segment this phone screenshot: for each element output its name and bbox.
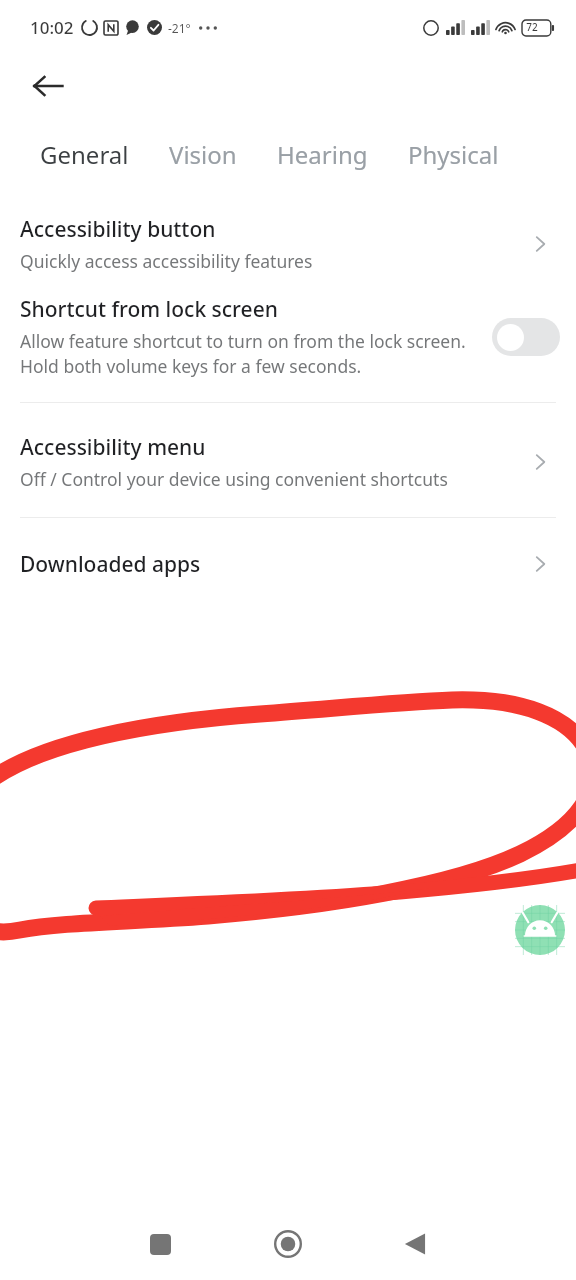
- button[interactable]: Downloaded apps: [0, 540, 576, 588]
- staticText: Accessibility button: [20, 215, 216, 244]
- button[interactable]: Accessibility menu: [0, 429, 576, 495]
- staticText: Accessibility menu: [20, 433, 206, 462]
- button[interactable]: General: [20, 132, 149, 177]
- button[interactable]: Hearing: [257, 132, 388, 177]
- button[interactable]: Back: [387, 1216, 443, 1272]
- staticText: 72: [526, 20, 538, 34]
- button[interactable]: Open Accessibility button: [520, 224, 560, 264]
- button[interactable]: Shortcut from lock screen: [0, 291, 576, 382]
- button[interactable]: Recent apps: [132, 1216, 188, 1272]
- button[interactable]: Accessibility button: [0, 211, 576, 277]
- staticText: Allow feature shortcut to turn on from t…: [20, 329, 484, 378]
- button[interactable]: Shortcut from lock screen toggle: [492, 318, 560, 356]
- staticText: Vision: [169, 138, 237, 171]
- staticText: -21°: [168, 20, 191, 36]
- button[interactable]: Home: [260, 1216, 316, 1272]
- button[interactable]: Vision: [149, 132, 257, 177]
- staticText: Quickly access accessibility features: [20, 249, 313, 273]
- staticText: Hearing: [277, 138, 368, 171]
- staticText: General: [40, 138, 129, 171]
- button[interactable]: Physical: [388, 132, 519, 177]
- button[interactable]: Floating assistant: [508, 898, 572, 962]
- button[interactable]: Open Accessibility menu: [520, 442, 560, 482]
- button[interactable]: Open Downloaded apps: [520, 544, 560, 584]
- button[interactable]: Back: [24, 62, 72, 110]
- staticText: Off / Control your device using convenie…: [20, 467, 448, 491]
- staticText: 10:02: [30, 16, 74, 39]
- staticText: Shortcut from lock screen: [20, 295, 278, 324]
- staticText: Physical: [408, 138, 499, 171]
- staticText: Downloaded apps: [20, 550, 201, 579]
